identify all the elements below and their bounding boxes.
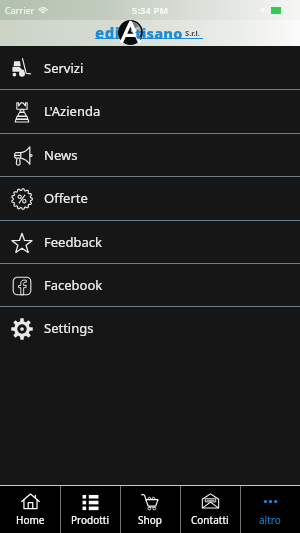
staticText: Offerte (44, 189, 88, 207)
staticText: Contatti (191, 513, 229, 527)
staticText: Servizi (44, 59, 84, 77)
staticText: Settings (44, 319, 94, 337)
button[interactable]: Settings (0, 306, 300, 349)
button[interactable]: News (0, 133, 300, 176)
staticText: Home (16, 513, 45, 527)
staticText: tisano (135, 23, 183, 43)
button[interactable]: L'Azienda (0, 89, 300, 132)
staticText: 5:34 PM (132, 4, 169, 17)
staticText: Prodotti (71, 513, 110, 527)
button[interactable]: Prodotti (60, 486, 120, 533)
button[interactable]: Offerte (0, 176, 300, 219)
staticText: L'Azienda (44, 102, 101, 120)
button[interactable]: Contatti (180, 486, 240, 533)
button[interactable]: altro (240, 486, 300, 533)
button[interactable]: Facebook (0, 263, 300, 306)
staticText: S.r.l. (185, 28, 200, 38)
button[interactable]: Home (0, 486, 60, 533)
staticText: Facebook (44, 276, 103, 294)
staticText: Feedback (44, 233, 102, 251)
button[interactable]: Shop (120, 486, 180, 533)
button[interactable]: Servizi (0, 46, 300, 89)
staticText: Carrier (5, 4, 35, 16)
staticText: altro (259, 513, 281, 527)
staticText: News (44, 146, 78, 164)
button[interactable]: Feedback (0, 220, 300, 263)
staticText: edil (95, 23, 126, 43)
staticText: Shop (138, 513, 162, 527)
